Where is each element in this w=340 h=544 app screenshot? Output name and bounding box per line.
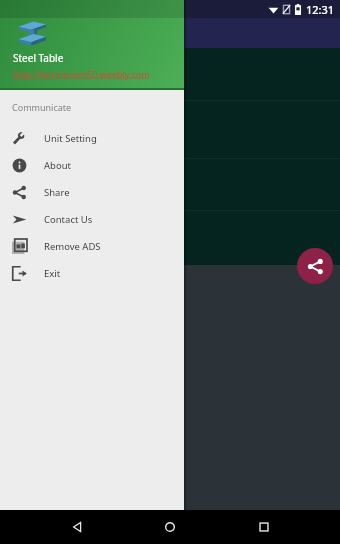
button[interactable]: Recents (247, 510, 281, 544)
staticText: Unit Setting (44, 132, 97, 145)
button[interactable]: Remove ADS (0, 233, 184, 260)
button[interactable]: Share (297, 248, 333, 284)
staticText: About (44, 159, 71, 172)
staticText: Communicate (12, 101, 72, 113)
staticText: 12:31 (306, 2, 335, 17)
button[interactable]: Contact Us (0, 206, 184, 233)
button[interactable]: Home (153, 510, 187, 544)
staticText: Share (44, 186, 70, 199)
staticText: http://technocom50.weebly.com (13, 68, 150, 80)
button[interactable]: Back (60, 510, 94, 544)
staticText: Remove ADS (44, 240, 101, 253)
staticText: Exit (44, 267, 61, 280)
button[interactable]: Unit Setting (0, 125, 184, 152)
button[interactable]: About (0, 152, 184, 179)
staticText: Contact Us (44, 213, 93, 226)
button[interactable]: Exit (0, 260, 184, 287)
staticText: Steel Table (13, 51, 64, 65)
button[interactable]: Share (0, 179, 184, 206)
